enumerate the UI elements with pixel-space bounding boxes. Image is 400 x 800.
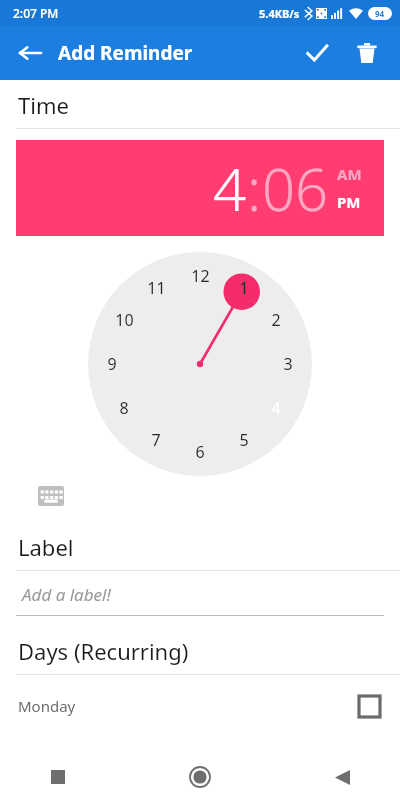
staticText: 6 (195, 441, 205, 463)
staticText: Days (Recurring) (18, 636, 189, 666)
staticText: 5.4KB/s (259, 6, 300, 21)
staticText: 94 (375, 8, 385, 19)
staticText: Add a label! (22, 583, 111, 606)
staticText: Time (18, 90, 69, 120)
staticText: Monday (18, 696, 76, 716)
staticText: 11 (147, 277, 166, 299)
staticText: Label (18, 532, 74, 562)
button[interactable]: Back (14, 37, 46, 69)
button[interactable]: Save (298, 34, 336, 72)
staticText: : (247, 149, 262, 228)
button[interactable]: Switch to keyboard input (38, 486, 64, 506)
button[interactable]: Home (178, 755, 222, 799)
button[interactable]: 06 (262, 149, 329, 228)
staticText: 9 (107, 353, 117, 375)
button[interactable]: Back (320, 755, 364, 799)
staticText: 2:07 PM (13, 5, 59, 21)
staticText: 1 (239, 277, 249, 299)
staticText: Add Reminder (58, 40, 193, 66)
staticText: 4 (271, 397, 281, 419)
staticText: 7 (151, 429, 161, 451)
button[interactable]: Monday (0, 685, 400, 727)
button[interactable]: Recents (36, 755, 80, 799)
staticText: 10 (115, 309, 134, 331)
staticText: 5 (239, 429, 249, 451)
button[interactable]: PM (337, 192, 361, 212)
staticText: 12 (191, 265, 210, 287)
button[interactable]: Add a label! (16, 583, 384, 616)
button[interactable]: 4 (213, 149, 247, 228)
staticText: 3 (283, 353, 293, 375)
staticText: 2 (271, 309, 281, 331)
button[interactable]: Delete (348, 34, 386, 72)
staticText: 8 (119, 397, 129, 419)
button[interactable]: AM (337, 164, 362, 184)
